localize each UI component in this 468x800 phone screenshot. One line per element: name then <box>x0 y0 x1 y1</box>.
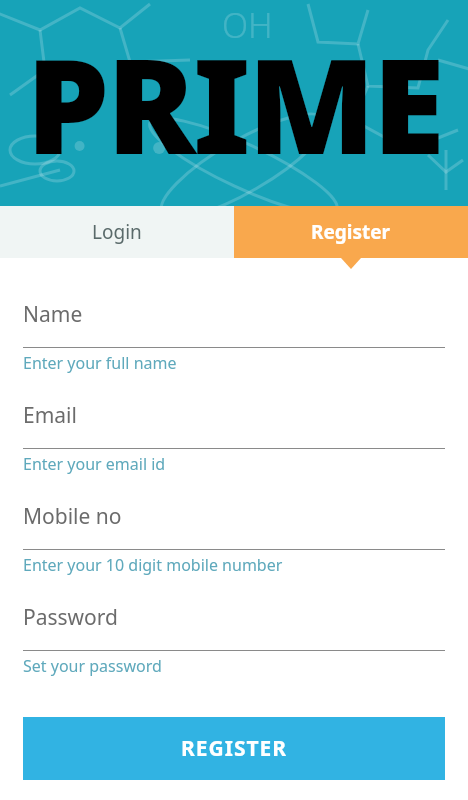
staticText: Enter your 10 digit mobile number <box>23 554 283 576</box>
staticText: Email <box>23 401 77 430</box>
button[interactable]: REGISTER <box>23 717 445 780</box>
staticText: Login <box>92 219 142 245</box>
button[interactable]: Register <box>234 206 468 258</box>
button[interactable]: Login <box>0 206 234 258</box>
staticText: Register <box>311 219 391 245</box>
staticText: Enter your full name <box>23 352 177 374</box>
button[interactable]: Email <box>0 401 468 502</box>
staticText: Mobile no <box>23 502 122 531</box>
staticText: PRIME <box>26 13 442 193</box>
staticText: REGISTER <box>181 734 288 763</box>
button[interactable]: Name <box>0 300 468 401</box>
staticText: OH <box>222 2 273 48</box>
staticText: Enter your email id <box>23 453 166 475</box>
staticText: Password <box>23 603 118 632</box>
staticText: Set your password <box>23 655 162 677</box>
button[interactable]: Mobile no <box>0 502 468 603</box>
staticText: Name <box>23 300 83 329</box>
button[interactable]: Password <box>0 603 468 704</box>
